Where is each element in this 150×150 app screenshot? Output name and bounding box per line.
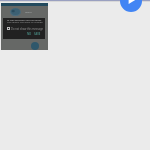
button[interactable]: Yes (34, 32, 41, 36)
staticText: SAVE (34, 32, 41, 36)
button[interactable]: Play video (120, 0, 142, 12)
button[interactable]: Do not show again (7, 27, 10, 30)
staticText: NO (27, 32, 32, 36)
staticText: the values you want to change (7, 20, 43, 23)
button[interactable]: Action (31, 42, 39, 50)
staticText: Menu (25, 10, 32, 13)
staticText: In this function you can enter (7, 18, 42, 21)
button[interactable]: No (27, 32, 32, 36)
staticText: Do not show this message (11, 27, 44, 31)
